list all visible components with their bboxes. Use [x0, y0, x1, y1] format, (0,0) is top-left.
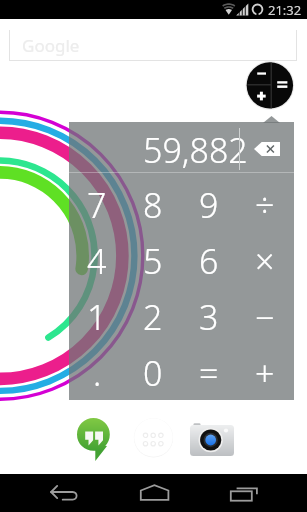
button[interactable]: 1 [69, 289, 125, 345]
button[interactable]: Calculator [245, 61, 295, 111]
staticText: 8 [143, 182, 163, 228]
button[interactable]: 8 [125, 177, 181, 233]
staticText: 5 [143, 238, 163, 284]
staticText: × [255, 238, 275, 284]
button[interactable]: . [69, 345, 125, 401]
staticText: 3 [199, 294, 219, 340]
button[interactable]: 9 [181, 177, 237, 233]
button[interactable]: + [237, 345, 293, 401]
button[interactable]: 2 [125, 289, 181, 345]
staticText: 0 [143, 350, 163, 396]
button[interactable]: Camera [189, 422, 235, 458]
button[interactable]: 5 [125, 233, 181, 289]
staticText: + [255, 350, 275, 396]
button[interactable]: 6 [181, 233, 237, 289]
button[interactable]: = [181, 345, 237, 401]
staticText: = [199, 350, 219, 396]
button[interactable]: Recent apps [224, 474, 307, 512]
staticText: 4 [87, 238, 107, 284]
staticText: 9 [199, 182, 219, 228]
button[interactable]: 0 [125, 345, 181, 401]
button[interactable]: 7 [69, 177, 125, 233]
button[interactable]: 3 [181, 289, 237, 345]
staticText: . [93, 350, 102, 396]
staticText: 2 [143, 294, 163, 340]
staticText: 6 [199, 238, 219, 284]
button[interactable]: Home [134, 474, 307, 512]
staticText: 7 [87, 182, 107, 228]
button[interactable]: − [237, 289, 293, 345]
button[interactable]: Google [9, 30, 297, 61]
button[interactable]: Back [43, 474, 307, 512]
staticText: 1 [87, 294, 107, 340]
staticText: − [255, 294, 275, 340]
button[interactable]: Hangouts [77, 418, 111, 458]
button[interactable]: Apps [134, 418, 173, 457]
staticText: ÷ [255, 182, 275, 228]
button[interactable]: ÷ [237, 177, 293, 233]
staticText: Google [22, 34, 80, 57]
button[interactable]: Delete [254, 142, 280, 156]
staticText: 59,882 [143, 127, 248, 173]
button[interactable]: × [237, 233, 293, 289]
staticText: 21:32 [268, 1, 302, 19]
button[interactable]: 4 [69, 233, 125, 289]
